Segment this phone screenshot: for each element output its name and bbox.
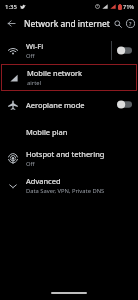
staticText: Mobile network (27, 68, 83, 78)
staticText: airtel (27, 79, 41, 87)
staticText: Network and internet (24, 18, 110, 30)
button[interactable]: Help (125, 16, 135, 31)
staticText: Data Saver, VPN, Private DNS (26, 187, 105, 195)
staticText: Hotspot and tethering (26, 149, 105, 159)
button[interactable]: Back (3, 15, 20, 32)
staticText: 1:35 (5, 3, 17, 11)
button[interactable]: Wi-Fi (0, 37, 138, 64)
button[interactable]: Mobile plan (0, 118, 138, 145)
button[interactable]: Toggle (117, 100, 132, 109)
staticText: Wi-Fi (26, 41, 44, 51)
staticText: Mobile plan (26, 127, 68, 137)
button[interactable]: Advanced (0, 172, 138, 199)
staticText: Advanced (26, 176, 61, 186)
button[interactable]: Hotspot and tethering (0, 145, 138, 172)
staticText: Aeroplane mode (26, 100, 85, 110)
staticText: Off (26, 160, 35, 168)
button[interactable]: Search (110, 16, 125, 31)
button[interactable]: Mobile network (1, 64, 137, 91)
button[interactable]: Toggle (117, 46, 132, 55)
staticText: 71% (123, 3, 134, 10)
staticText: Off (26, 52, 35, 60)
staticText: ? (129, 20, 132, 27)
button[interactable]: Aeroplane mode (0, 91, 138, 118)
